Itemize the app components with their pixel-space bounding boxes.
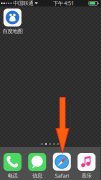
staticText: 信息 (32, 172, 42, 179)
staticText: 中国联通 (13, 0, 33, 7)
button[interactable]: Safari (51, 153, 73, 179)
button[interactable]: 电话 (1, 153, 23, 179)
staticText: 音乐 (81, 172, 91, 179)
button[interactable]: 信息 (26, 153, 48, 179)
staticText: Safari (55, 172, 69, 179)
staticText: 百度地图 (2, 28, 22, 35)
button[interactable]: 音乐 (75, 153, 97, 179)
staticText: 下午 4:51 (53, 0, 74, 7)
button[interactable]: 百度地图 (1, 8, 23, 35)
staticText: 电话 (7, 172, 17, 179)
